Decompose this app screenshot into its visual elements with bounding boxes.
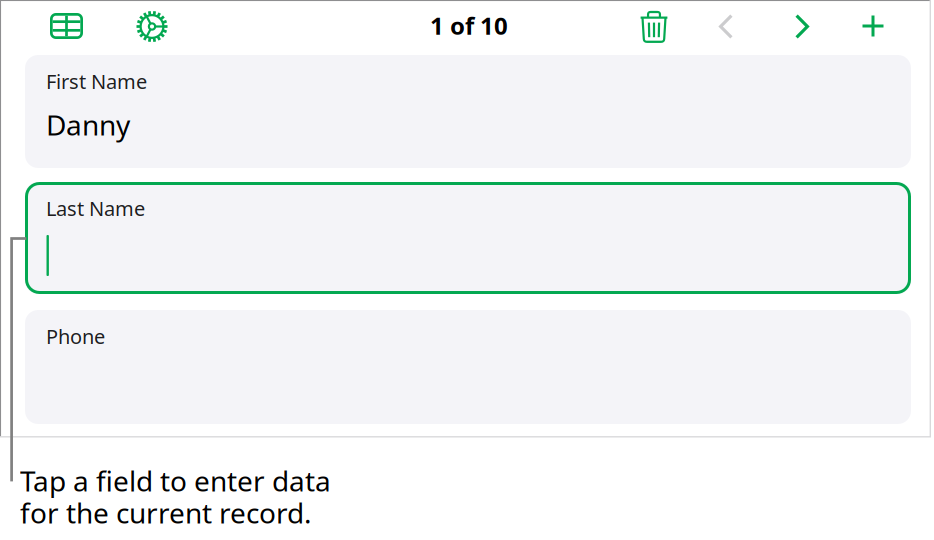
button[interactable]: Last Name (25, 182, 911, 294)
staticText: Tap a field to enter data (20, 462, 331, 499)
button[interactable]: Delete record (639, 10, 668, 43)
staticText: for the current record. (20, 494, 312, 531)
staticText: First Name (46, 68, 147, 95)
staticText: Last Name (46, 195, 145, 222)
button[interactable]: Table view (50, 13, 83, 39)
button[interactable]: Add record (861, 14, 885, 38)
button[interactable]: First Name (25, 55, 911, 168)
button[interactable]: Next record (795, 14, 809, 39)
button[interactable]: Phone (25, 310, 911, 424)
staticText: Phone (46, 323, 105, 350)
button[interactable]: Previous record (719, 14, 733, 39)
staticText: Danny (46, 106, 130, 143)
button[interactable]: Organize (135, 10, 168, 43)
staticText: 1 of 10 (430, 9, 508, 41)
